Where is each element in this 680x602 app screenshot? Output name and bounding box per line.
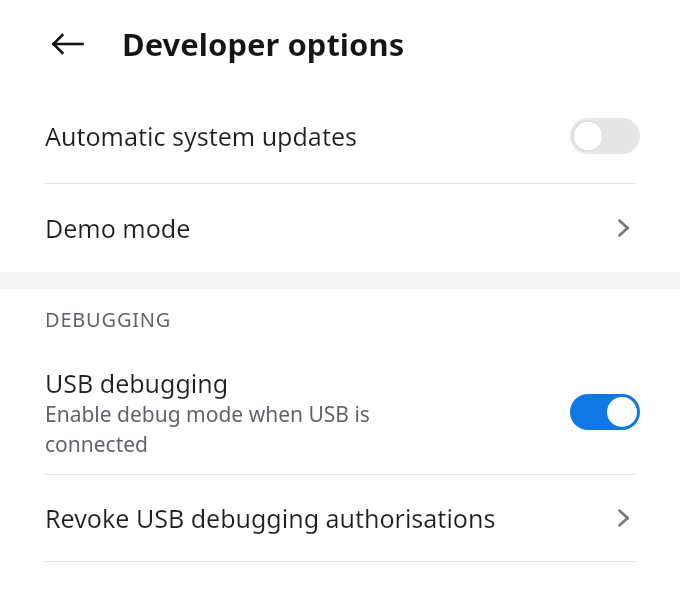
button[interactable]: USB debugging: [0, 349, 680, 474]
staticText: Demo mode: [45, 211, 191, 245]
staticText: DEBUGGING: [45, 306, 172, 333]
staticText: Enable debug mode when USB is connected: [45, 400, 370, 458]
button[interactable]: Demo mode: [0, 184, 680, 272]
staticText: Developer options: [122, 23, 405, 65]
staticText: Revoke USB debugging authorisations: [45, 501, 496, 535]
button[interactable]: USB debugging toggle: [570, 390, 640, 434]
button[interactable]: Revoke USB debugging authorisations: [0, 475, 680, 561]
staticText: USB debugging: [45, 366, 229, 400]
button[interactable]: Back: [46, 22, 90, 66]
staticText: Automatic system updates: [45, 119, 357, 153]
button[interactable]: Automatic system updates: [0, 88, 680, 183]
button[interactable]: Automatic system updates toggle: [570, 114, 640, 158]
